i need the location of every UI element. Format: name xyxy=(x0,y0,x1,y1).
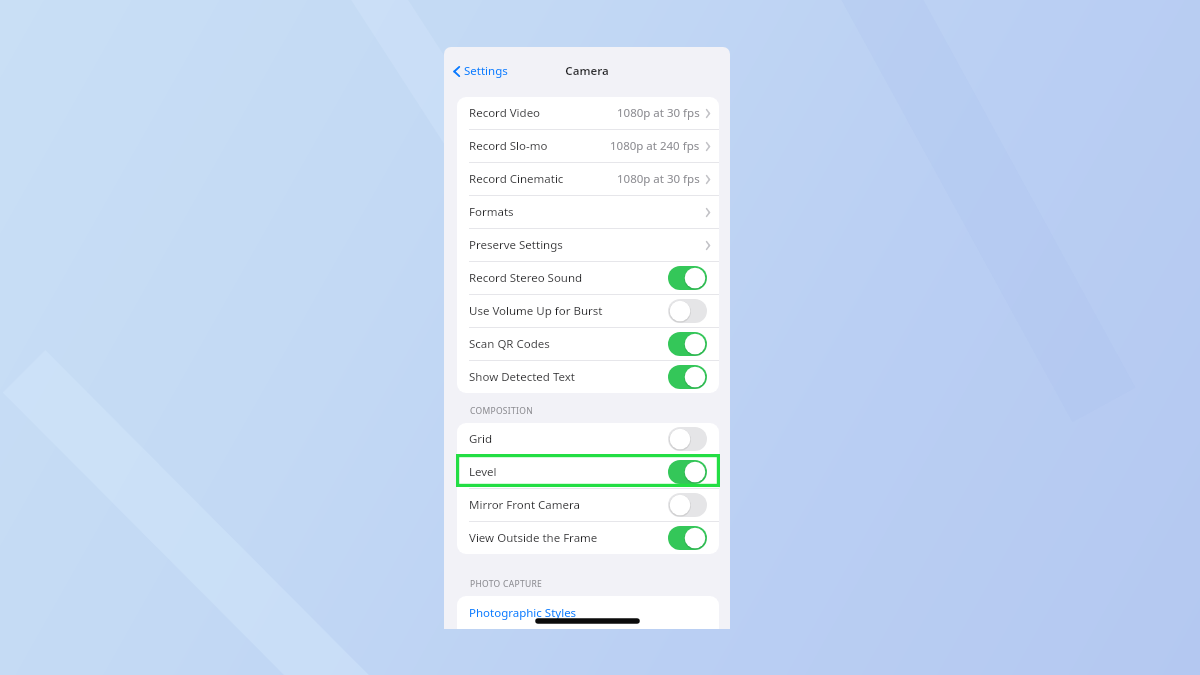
button[interactable]: Record Slo-mo xyxy=(457,130,719,162)
staticText: Scan QR Codes xyxy=(469,336,550,352)
staticText: Record Slo-mo xyxy=(469,138,548,154)
staticText: Photographic Styles xyxy=(469,605,577,621)
button[interactable]: Preserve Settings xyxy=(457,229,719,261)
staticText: Record Cinematic xyxy=(469,171,564,187)
staticText: Show Detected Text xyxy=(469,369,575,385)
button[interactable]: Mirror Front Camera xyxy=(457,489,719,521)
staticText: Mirror Front Camera xyxy=(469,497,580,513)
staticText: 1080p at 240 fps xyxy=(610,138,700,154)
button[interactable]: Scan QR Codes, on xyxy=(668,332,707,356)
button[interactable]: Record Stereo Sound, on xyxy=(668,266,707,290)
button[interactable]: View Outside the Frame, on xyxy=(668,526,707,550)
button[interactable]: Mirror Front Camera, off xyxy=(668,493,707,517)
staticText: Record Video xyxy=(469,105,541,121)
staticText: COMPOSITION xyxy=(470,405,533,417)
staticText: Preserve Settings xyxy=(469,237,563,253)
button[interactable]: Level xyxy=(457,456,719,488)
staticText: 1080p at 30 fps xyxy=(617,171,700,187)
staticText: 1080p at 30 fps xyxy=(617,105,700,121)
button[interactable]: Use Volume Up for Burst, off xyxy=(668,299,707,323)
staticText: View Outside the Frame xyxy=(469,530,598,546)
staticText: Use Volume Up for Burst xyxy=(469,303,603,319)
button[interactable]: Show Detected Text xyxy=(457,361,719,393)
staticText: PHOTO CAPTURE xyxy=(470,578,543,590)
button[interactable]: View Outside the Frame xyxy=(457,522,719,554)
staticText: Settings xyxy=(464,63,508,79)
button[interactable]: Grid, off xyxy=(668,427,707,451)
button[interactable]: Record Cinematic xyxy=(457,163,719,195)
staticText: Record Stereo Sound xyxy=(469,270,583,286)
button[interactable]: Show Detected Text, on xyxy=(668,365,707,389)
staticText: Camera xyxy=(565,63,609,79)
button[interactable]: Grid xyxy=(457,423,719,455)
button[interactable]: Scan QR Codes xyxy=(457,328,719,360)
button[interactable]: Level, on xyxy=(668,460,707,484)
button[interactable]: Record Video xyxy=(457,97,719,129)
button[interactable]: Photographic Styles xyxy=(457,596,719,629)
staticText: Grid xyxy=(469,431,493,447)
button[interactable]: Formats xyxy=(457,196,719,228)
button[interactable]: Use Volume Up for Burst xyxy=(457,295,719,327)
button[interactable]: Record Stereo Sound xyxy=(457,262,719,294)
button[interactable]: Settings xyxy=(451,59,510,83)
staticText: Formats xyxy=(469,204,514,220)
staticText: Level xyxy=(469,464,497,480)
